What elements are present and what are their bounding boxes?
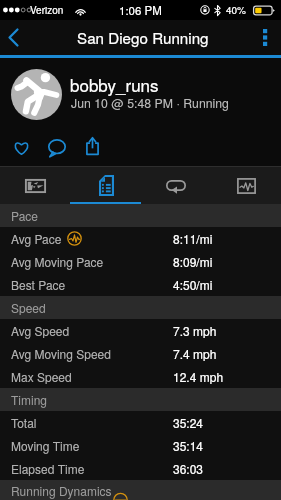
button[interactable]: Avg Moving Speed (0, 342, 281, 365)
staticText: 8:09/mi (173, 253, 213, 270)
button[interactable]: Laps (141, 167, 211, 204)
staticText: Moving Time (11, 437, 80, 454)
button[interactable]: Elapsed Time (0, 457, 281, 480)
staticText: 35:14 (173, 437, 204, 454)
button[interactable]: Max Speed (0, 365, 281, 388)
button[interactable]: Like (6, 133, 36, 163)
staticText: 40% (226, 3, 247, 17)
button[interactable]: Best Pace (0, 273, 281, 296)
staticText: Best Pace (11, 276, 66, 293)
staticText: 1:06 PM (119, 2, 162, 18)
staticText: Avg Pace (11, 230, 62, 247)
staticText: Timing (11, 391, 48, 408)
staticText: 35:24 (173, 414, 204, 431)
staticText: Speed (11, 299, 46, 316)
staticText: 12.4 mph (173, 368, 224, 385)
staticText: Total (11, 414, 37, 431)
button[interactable]: Charts (211, 167, 281, 204)
staticText: 36:03 (173, 460, 204, 477)
staticText: Avg Moving Pace (11, 253, 104, 270)
button[interactable]: Back (0, 20, 27, 55)
button[interactable]: Total (0, 411, 281, 434)
staticText: Elapsed Time (11, 460, 85, 477)
button[interactable]: Avg Speed (0, 319, 281, 342)
staticText: Max Speed (11, 368, 72, 385)
staticText: 7.4 mph (173, 345, 217, 362)
staticText: bobby_runs (70, 72, 159, 96)
button[interactable]: Details (71, 167, 141, 204)
staticText: 7.3 mph (173, 322, 217, 339)
staticText: Pace (11, 207, 38, 224)
staticText: Running Dynamics (11, 482, 112, 499)
button[interactable]: Moving Time (0, 434, 281, 457)
button[interactable]: Avg Moving Pace (0, 250, 281, 273)
staticText: Avg Moving Speed (11, 345, 111, 362)
staticText: Jun 10 @ 5:48 PM · Running (71, 94, 229, 112)
staticText: Verizon (30, 3, 64, 17)
staticText: 4:50/mi (173, 276, 213, 293)
staticText: 8:11/mi (173, 230, 213, 247)
staticText: Avg Speed (11, 322, 70, 339)
staticText: San Diego Running (77, 27, 209, 49)
button[interactable]: More options (249, 20, 281, 55)
button[interactable]: Comment (42, 133, 72, 163)
button[interactable]: Map (0, 167, 71, 204)
button[interactable]: Share (77, 131, 107, 161)
button[interactable]: Avg Pace (0, 227, 281, 250)
